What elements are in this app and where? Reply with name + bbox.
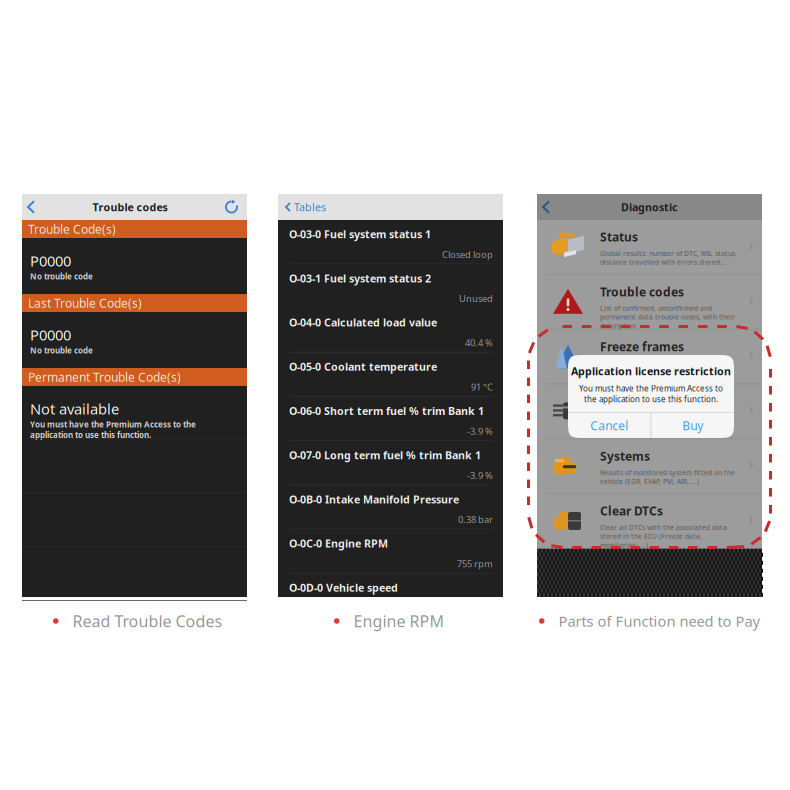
- staticText: Tables: [294, 200, 326, 214]
- staticText: Freeze frames: [600, 339, 684, 354]
- staticText: 40.4 %: [465, 336, 493, 349]
- staticText: Systems: [600, 448, 650, 464]
- staticText: O-04-0 Calculated load value: [289, 315, 437, 330]
- staticText: Results of monitored system fitted on th…: [600, 468, 735, 477]
- button[interactable]: O-05-0 Coolant temperature: [278, 353, 503, 397]
- button[interactable]: Status: [537, 220, 762, 275]
- staticText: Global results: number of DTC, MIL statu…: [600, 249, 737, 258]
- staticText: You must have the Premium Access to: [579, 383, 723, 394]
- button[interactable]: O-03-0 Fuel system status 1: [278, 220, 503, 264]
- button[interactable]: Cancel: [568, 413, 651, 438]
- button[interactable]: O-07-0 Long term fuel % trim Bank 1: [278, 441, 503, 485]
- button[interactable]: Back: [22, 194, 48, 220]
- staticText: Parts of Function need to Pay: [558, 611, 759, 631]
- button[interactable]: Freeze frames: [537, 330, 762, 384]
- staticText: application to use this function.: [30, 430, 151, 440]
- staticText: No trouble code: [30, 345, 93, 356]
- staticText: Engine RPM: [353, 610, 444, 632]
- button[interactable]: Clear DTCs: [537, 494, 762, 549]
- staticText: permanent data trouble codes, with their: [600, 313, 735, 321]
- staticText: Read Trouble Codes: [72, 610, 222, 632]
- staticText: O-07-0 Long term fuel % trim Bank 1: [289, 448, 481, 462]
- button[interactable]: O-0C-0 Engine RPM: [278, 529, 503, 574]
- button[interactable]: Systems: [537, 439, 762, 494]
- staticText: Cancel: [590, 417, 628, 433]
- button[interactable]: O-03-1 Fuel system status 2: [278, 264, 503, 308]
- staticText: O-03-1 Fuel system status 2: [289, 271, 431, 285]
- staticText: List of confirmed, unconfirmed and: [600, 304, 712, 313]
- staticText: O-06-0 Short term fuel % trim Bank 1: [289, 404, 484, 418]
- staticText: Status: [600, 229, 638, 245]
- staticText: Trouble codes: [92, 200, 167, 214]
- staticText: P0000: [30, 325, 71, 344]
- staticText: 0.38 bar: [458, 513, 493, 526]
- staticText: distance travelled with errors stored...: [600, 258, 726, 267]
- staticText: description: [600, 321, 636, 330]
- staticText: No trouble code: [30, 271, 93, 282]
- staticText: Clear DTCs: [600, 503, 663, 519]
- staticText: monitoring, ...): [600, 541, 648, 549]
- button[interactable]: O-06-0 Short term fuel % trim Bank 1: [278, 397, 503, 441]
- staticText: You must have the Premium Access to the: [30, 419, 196, 430]
- staticText: Buy: [682, 417, 703, 433]
- button[interactable]: Trouble codes: [537, 275, 762, 330]
- staticText: stored in the ECU (Freeze data,: [600, 532, 702, 541]
- staticText: Not available: [30, 399, 119, 418]
- staticText: O-05-0 Coolant temperature: [289, 360, 437, 374]
- staticText: O-0D-0 Vehicle speed: [289, 581, 398, 595]
- staticText: Trouble codes: [600, 284, 684, 300]
- button[interactable]: Back: [537, 194, 563, 220]
- staticText: Trouble Code(s): [28, 221, 116, 237]
- button[interactable]: O-0B-0 Intake Manifold Pressure: [278, 485, 503, 529]
- staticText: Application license restriction: [571, 364, 731, 378]
- button[interactable]: Buy: [651, 413, 734, 438]
- staticText: O-03-0 Fuel system status 1: [289, 227, 431, 241]
- staticText: Unused: [459, 292, 493, 305]
- staticText: 91 °C: [471, 381, 493, 393]
- staticText: O-0B-0 Intake Manifold Pressure: [289, 492, 459, 506]
- staticText: O-0C-0 Engine RPM: [289, 536, 388, 551]
- staticText: -3.9 %: [467, 469, 493, 481]
- button[interactable]: O-0D-0 Vehicle speed: [278, 574, 503, 598]
- staticText: Closed loop: [442, 248, 493, 260]
- staticText: Diagnostic: [621, 200, 678, 214]
- staticText: -3.9 %: [467, 425, 493, 437]
- staticText: vehicle (EGR, EVAP, PM, AIR, ...): [600, 477, 699, 486]
- button[interactable]: O-04-0 Calculated load value: [278, 308, 503, 353]
- button[interactable]: Tables: [278, 194, 334, 220]
- staticText: P0000: [30, 251, 71, 270]
- staticText: Clear all DTCs with the associated data: [600, 523, 727, 532]
- button[interactable]: Refresh: [212, 194, 247, 220]
- staticText: the application to use this function.: [584, 394, 718, 404]
- staticText: Last Trouble Code(s): [28, 295, 142, 311]
- button[interactable]: [537, 384, 762, 439]
- staticText: Permanent Trouble Code(s): [28, 369, 181, 385]
- staticText: 755 rpm: [457, 557, 493, 570]
